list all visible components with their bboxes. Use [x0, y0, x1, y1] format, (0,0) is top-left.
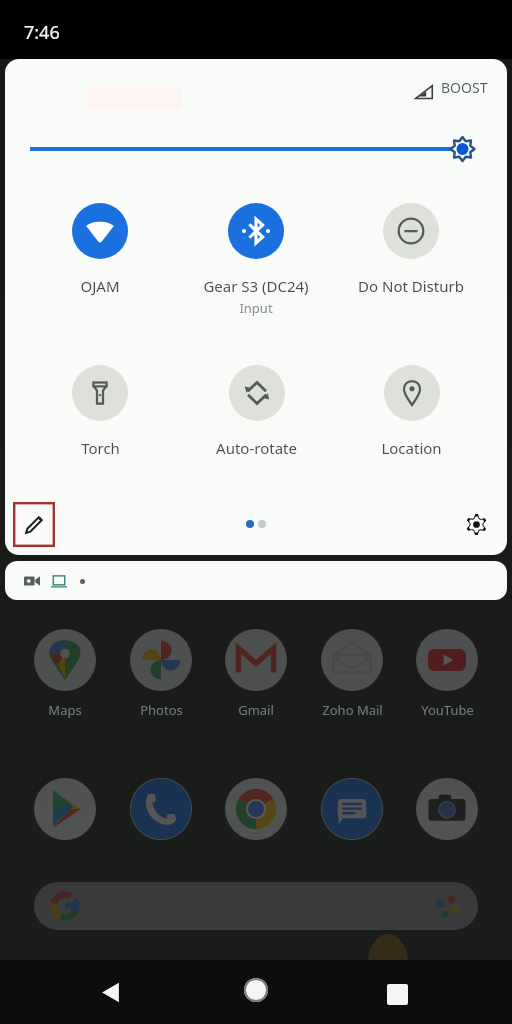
- staticText: Input: [239, 299, 273, 317]
- staticText: 7:46: [24, 20, 60, 45]
- button[interactable]: Auto-rotate: [178, 365, 334, 483]
- button[interactable]: Gear S3 (DC24): [178, 203, 334, 321]
- button[interactable]: Zoho Mail: [306, 629, 398, 719]
- button[interactable]: [115, 778, 207, 840]
- button[interactable]: Photos: [115, 629, 207, 719]
- button[interactable]: BOOST: [410, 74, 500, 100]
- staticText: Maps: [48, 701, 82, 719]
- staticText: BOOST: [441, 78, 488, 97]
- button[interactable]: Recent apps: [375, 972, 419, 1016]
- staticText: Torch: [81, 438, 120, 458]
- button[interactable]: Home: [234, 968, 278, 1012]
- button[interactable]: Edit quick settings: [13, 502, 55, 547]
- button[interactable]: [5, 561, 507, 600]
- staticText: YouTube: [421, 701, 474, 719]
- button[interactable]: [34, 882, 478, 930]
- button[interactable]: [401, 778, 493, 840]
- button[interactable]: Maps: [19, 629, 111, 719]
- staticText: Gear S3 (DC24): [203, 276, 309, 296]
- staticText: Location: [381, 438, 442, 458]
- staticText: Gmail: [238, 701, 274, 719]
- button[interactable]: Back: [88, 970, 132, 1014]
- button[interactable]: Gmail: [210, 629, 302, 719]
- button[interactable]: Location: [333, 365, 489, 483]
- staticText: Auto-rotate: [216, 438, 297, 458]
- button[interactable]: [19, 778, 111, 840]
- button[interactable]: Settings: [455, 503, 498, 546]
- staticText: Do Not Disturb: [358, 276, 464, 296]
- button[interactable]: [210, 778, 302, 840]
- staticText: Photos: [140, 701, 183, 719]
- button[interactable]: OJAM: [22, 203, 178, 321]
- button[interactable]: Torch: [22, 365, 178, 483]
- staticText: Zoho Mail: [322, 701, 383, 719]
- button[interactable]: Do Not Disturb: [333, 203, 489, 321]
- button[interactable]: [306, 778, 398, 840]
- staticText: OJAM: [80, 276, 120, 296]
- button[interactable]: YouTube: [401, 629, 493, 719]
